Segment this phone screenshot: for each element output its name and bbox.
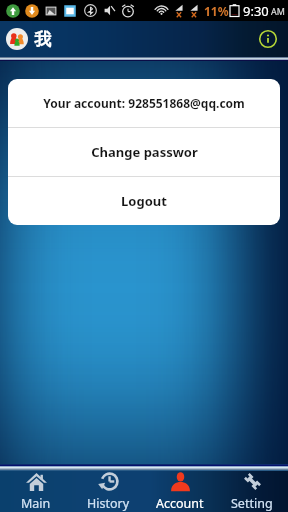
staticText: Main: [21, 495, 51, 512]
button[interactable]: Logout: [8, 177, 280, 225]
staticText: 我: [34, 29, 51, 50]
staticText: Your account: 928551868@qq.com: [43, 95, 245, 111]
button[interactable]: Main: [0, 471, 72, 512]
button[interactable]: Change passwor: [8, 128, 280, 176]
staticText: 11%: [204, 3, 229, 19]
staticText: 9:30: [243, 2, 269, 20]
button[interactable]: Account: [144, 471, 216, 512]
staticText: Setting: [231, 495, 273, 512]
staticText: Account: [156, 495, 204, 512]
button[interactable]: Setting: [216, 471, 288, 512]
button[interactable]: History: [72, 471, 144, 512]
staticText: History: [87, 495, 130, 512]
staticText: Logout: [121, 192, 167, 210]
button[interactable]: Your account: 928551868@qq.com: [8, 79, 280, 127]
button[interactable]: Info: [257, 28, 279, 50]
staticText: AM: [271, 5, 285, 17]
staticText: Change passwor: [91, 143, 198, 161]
